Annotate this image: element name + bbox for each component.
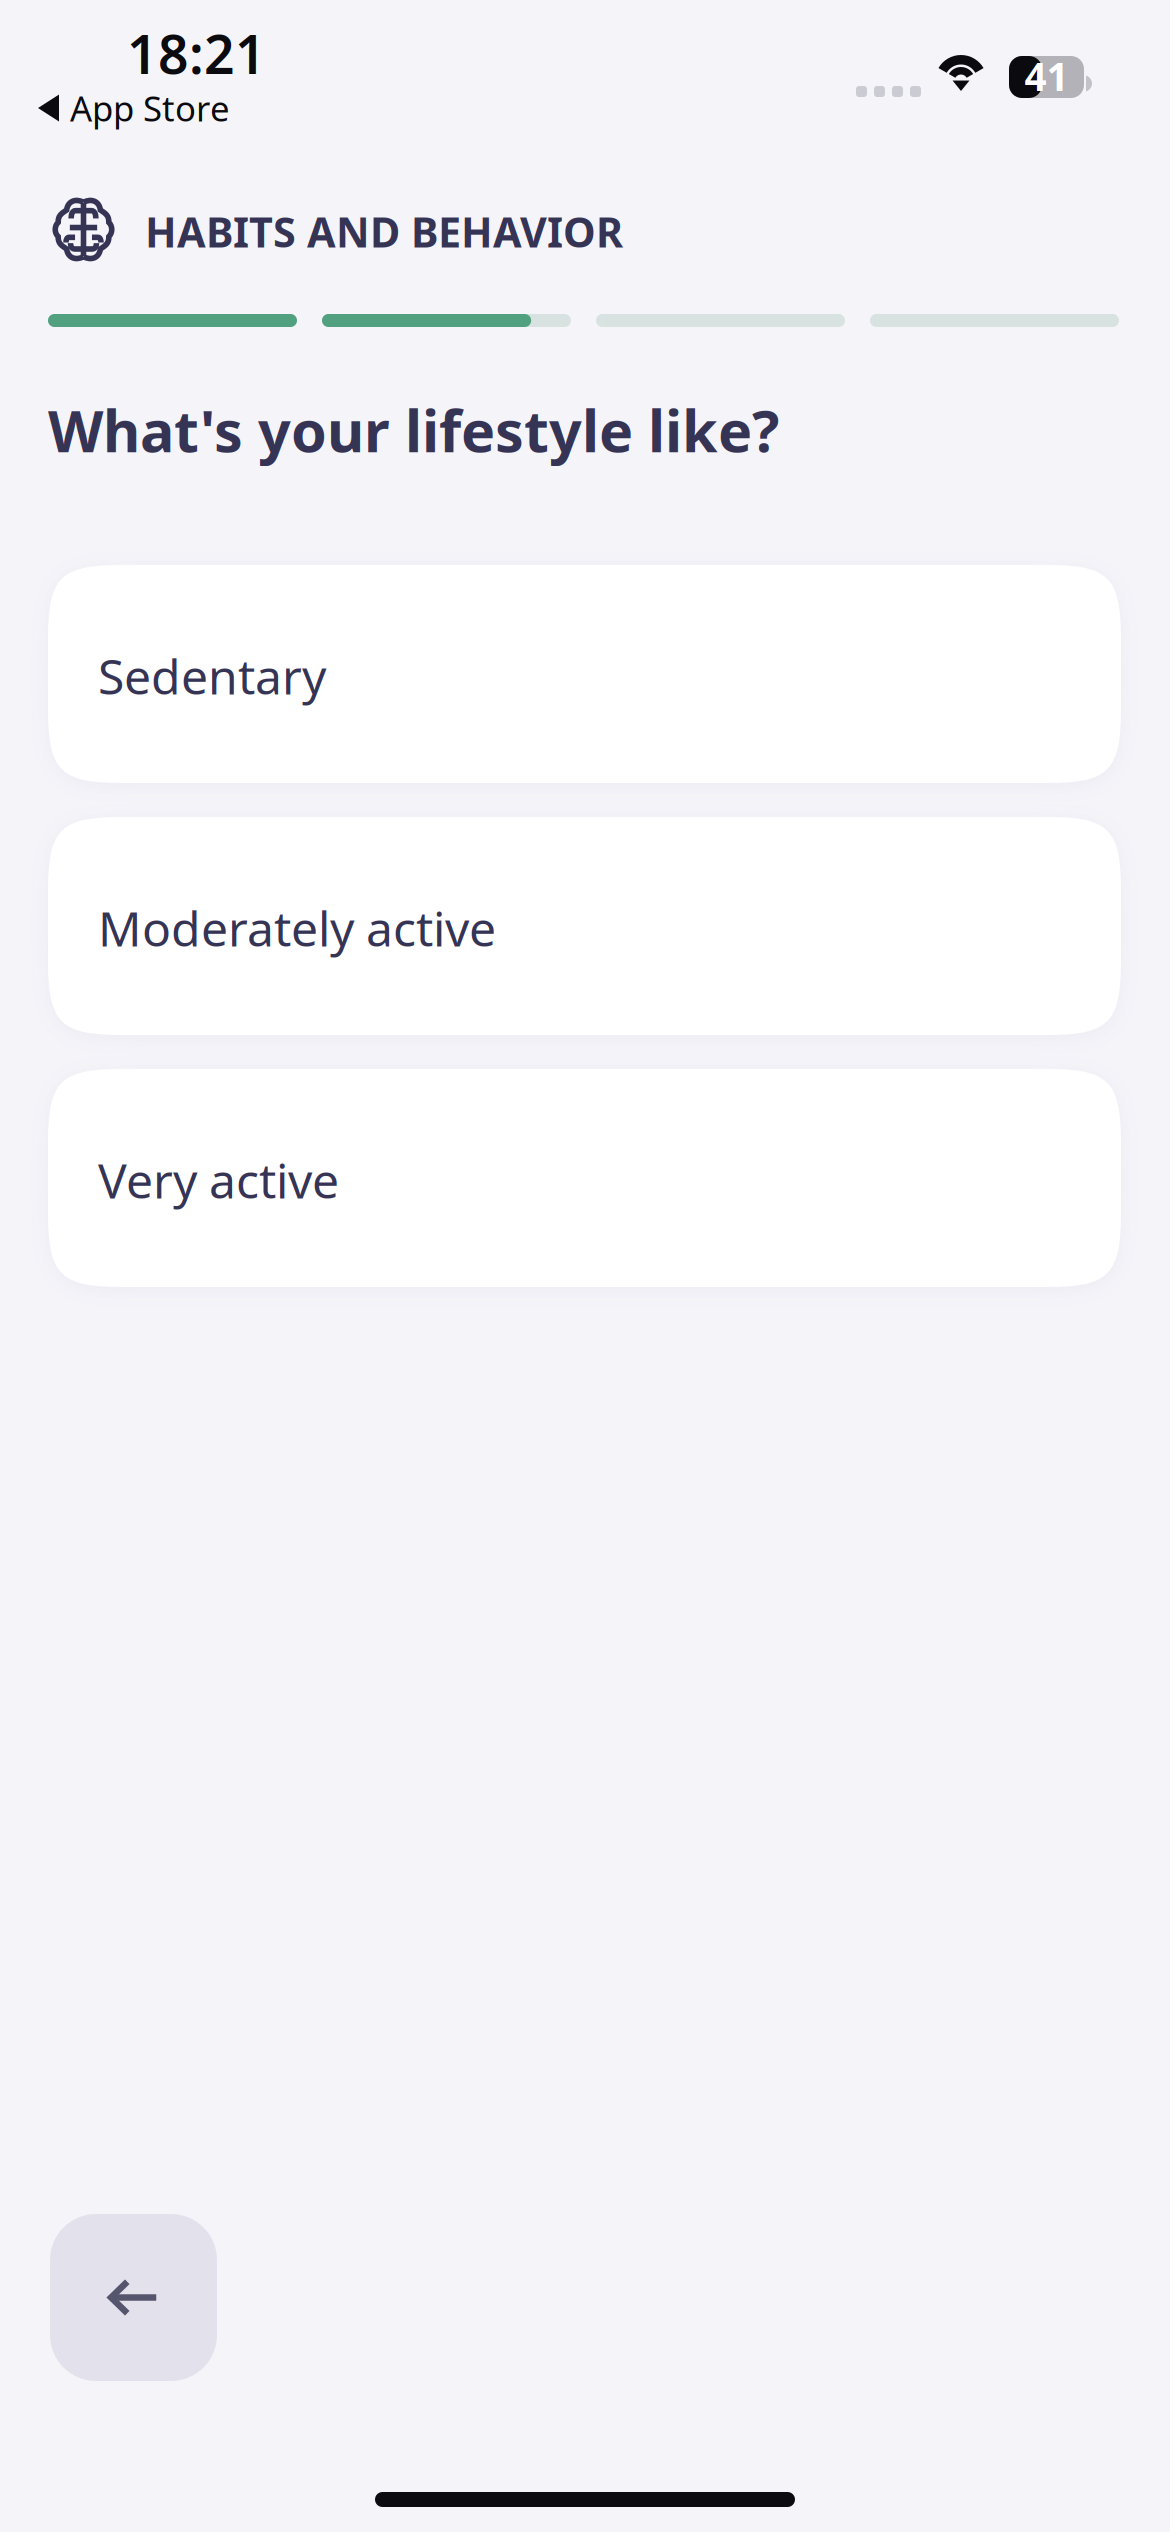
button[interactable]: Back [50, 2214, 217, 2381]
button[interactable]: Very active [48, 1069, 1121, 1287]
staticText: HABITS AND BEHAVIOR [145, 204, 623, 259]
staticText: Very active [98, 1148, 339, 1212]
button[interactable]: App Store [38, 85, 230, 131]
staticText: Sedentary [98, 644, 326, 708]
staticText: App Store [70, 85, 230, 131]
staticText: What's your lifestyle like? [48, 392, 779, 468]
button[interactable]: Moderately active [48, 817, 1121, 1035]
staticText: 18:21 [127, 18, 266, 89]
button[interactable]: Sedentary [48, 565, 1121, 783]
staticText: 41 [1024, 50, 1068, 102]
staticText: Moderately active [98, 896, 496, 960]
